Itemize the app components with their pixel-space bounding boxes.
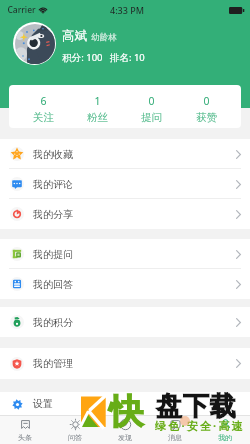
staticText: 0 (148, 94, 155, 108)
staticText: 4:33 PM (110, 4, 144, 16)
button[interactable]: 问答 (50, 416, 100, 444)
button[interactable]: 发现 (100, 416, 150, 444)
staticText: 我的管理 (33, 357, 73, 370)
staticText: 粉丝 (87, 111, 108, 124)
staticText: 0 (203, 94, 210, 108)
staticText: 关注 (33, 111, 54, 124)
staticText: 我的回答 (33, 278, 73, 291)
staticText: 我的分享 (33, 208, 73, 221)
staticText: 1 (94, 94, 101, 108)
button[interactable]: 0 (124, 85, 179, 128)
staticText: Carrier (7, 4, 36, 16)
staticText: 快 (109, 390, 143, 433)
button[interactable]: 消息 (150, 416, 200, 444)
staticText: 幼龄林 (91, 32, 117, 43)
staticText: 发现 (118, 433, 132, 442)
button[interactable]: 我的管理 (0, 348, 250, 379)
staticText: 6 (40, 94, 47, 108)
button[interactable]: 我的 (200, 416, 250, 444)
staticText: 我的 (218, 433, 232, 442)
button[interactable]: 我的收藏 (0, 139, 250, 169)
staticText: 绿色·安全·高速 (155, 418, 245, 433)
staticText: 设置 (33, 397, 53, 410)
staticText: 获赞 (196, 111, 217, 124)
button[interactable]: 头条 (0, 416, 50, 444)
staticText: 头条 (18, 433, 32, 442)
button[interactable]: 1 (70, 85, 124, 128)
staticText: 高斌 (62, 28, 87, 44)
button[interactable]: 我的回答 (0, 269, 250, 299)
staticText: 积分: 100 排名: 10 (62, 51, 145, 64)
staticText: 问答 (68, 433, 82, 442)
staticText: 我的收藏 (33, 148, 73, 161)
staticText: 我的提问 (33, 248, 73, 261)
button[interactable]: 我的提问 (0, 239, 250, 269)
button[interactable]: 我的积分 (0, 307, 250, 337)
staticText: 提问 (141, 111, 162, 124)
staticText: 我的评论 (33, 178, 73, 191)
button[interactable]: 我的分享 (0, 199, 250, 229)
button[interactable]: 0 (179, 85, 234, 128)
button[interactable]: 设置 (0, 392, 250, 415)
staticText: 消息 (168, 433, 182, 442)
button[interactable]: 6 (16, 85, 70, 128)
button[interactable]: 我的评论 (0, 169, 250, 199)
staticText: 盘下载 (156, 390, 237, 423)
staticText: 我的积分 (33, 316, 73, 329)
